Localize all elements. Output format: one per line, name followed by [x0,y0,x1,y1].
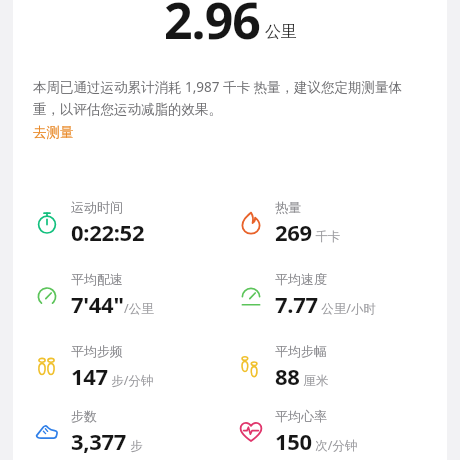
staticText: 步数 [71,408,97,424]
staticText: 平均步频 [71,343,123,359]
other: 平均心率 [238,419,264,445]
staticText: 0:22:52 [71,217,145,247]
staticText: 269 [275,217,312,247]
staticText: 厘米 [300,372,329,389]
button[interactable]: 平均步幅 [230,331,447,403]
other: 步数 [34,419,60,445]
staticText: 本周已通过运动累计消耗 1,987 千卡 热量，建议您定期测量体重，以评估您运动… [33,78,429,118]
staticText: 150 [275,426,312,456]
other: 热量 [238,210,264,236]
other: 平均配速 [34,282,60,308]
button[interactable]: 运动时间 [13,187,230,259]
button[interactable]: 平均配速 [13,259,230,331]
other: 平均步频 [34,354,60,380]
staticText: 公里 [265,22,297,42]
staticText: 热量 [275,199,301,215]
button[interactable]: 步数 [13,403,230,460]
staticText: 7'44" [71,289,124,319]
staticText: 2.96 [164,0,260,48]
staticText: 去测量 [33,124,74,141]
staticText: 步/分钟 [108,372,154,389]
staticText: /公里 [124,300,154,317]
staticText: 次/分钟 [312,437,358,454]
staticText: 千卡 [312,228,341,245]
button[interactable]: 平均心率 [230,403,447,460]
other: 平均步幅 [238,354,264,380]
staticText: 147 [71,361,108,391]
staticText: 平均速度 [275,271,327,287]
staticText: 公里/小时 [318,300,376,317]
other: 平均速度 [238,282,264,308]
staticText: 步 [127,437,143,454]
button[interactable]: 热量 [230,187,447,259]
staticText: 平均配速 [71,271,123,287]
staticText: 7.77 [275,289,318,319]
button[interactable]: 平均速度 [230,259,447,331]
button[interactable]: 去测量 [33,122,74,143]
staticText: 88 [275,361,300,391]
staticText: 平均心率 [275,408,327,424]
staticText: 平均步幅 [275,343,327,359]
staticText: 3,377 [71,426,127,456]
staticText: 运动时间 [71,199,123,215]
button[interactable]: 平均步频 [13,331,230,403]
other: 运动时间 [34,210,60,236]
